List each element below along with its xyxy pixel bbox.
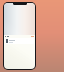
button[interactable]	[5, 38, 34, 44]
